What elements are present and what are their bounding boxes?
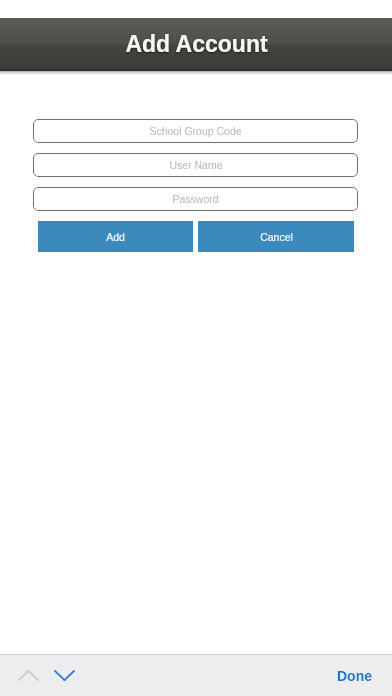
button[interactable]: Password (33, 187, 358, 211)
staticText: Add (106, 231, 125, 243)
staticText: Done (337, 668, 372, 684)
button[interactable]: Done (325, 657, 384, 695)
button[interactable]: User Name (33, 153, 358, 177)
button[interactable]: Cancel (198, 221, 354, 252)
button[interactable]: School Group Code (33, 119, 358, 143)
staticText: School Group Code (149, 125, 242, 137)
staticText: Add Account (125, 31, 268, 57)
staticText: Cancel (260, 231, 293, 243)
button[interactable]: Next field (47, 657, 82, 695)
staticText: User Name (169, 159, 223, 171)
button[interactable]: Add (38, 221, 193, 252)
button[interactable]: Previous field (11, 657, 46, 695)
staticText: Password (172, 193, 219, 205)
